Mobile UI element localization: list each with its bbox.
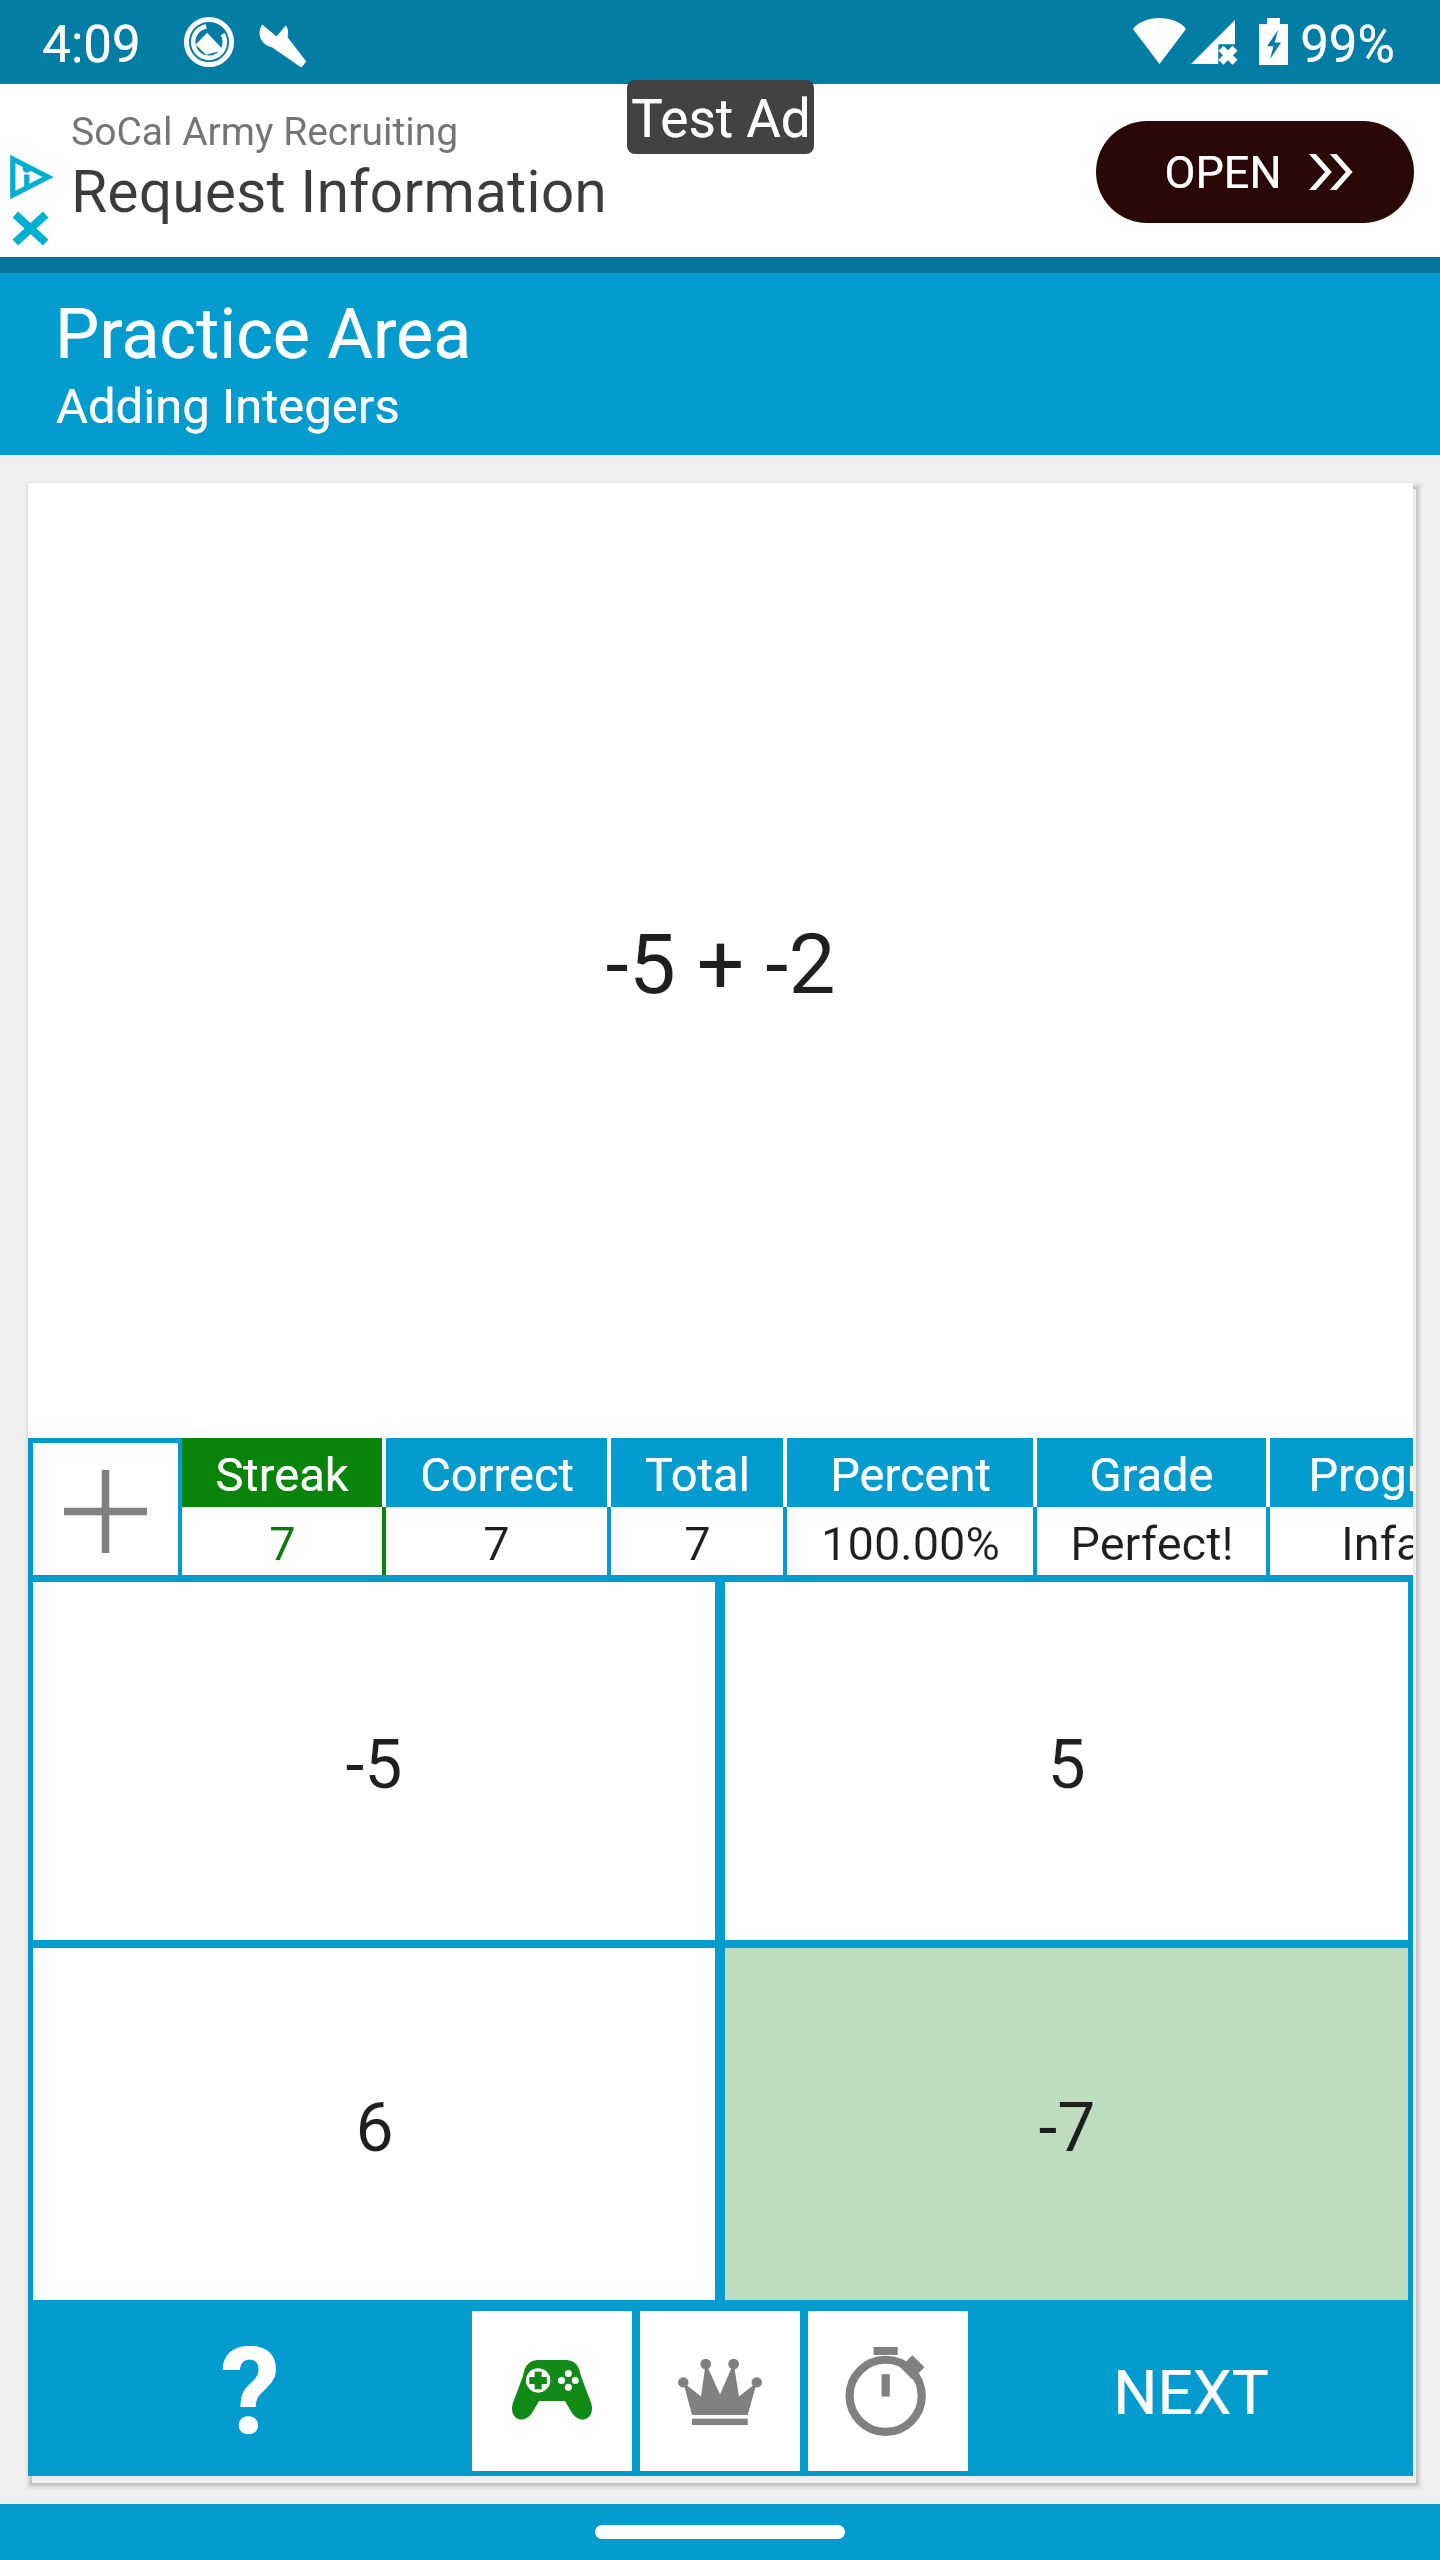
staticText: -5 + -2: [605, 915, 836, 1013]
staticText: 100.00%: [821, 1516, 1000, 1571]
staticText: Grade: [1089, 1447, 1214, 1502]
staticText: ?: [220, 2322, 280, 2463]
staticText: Perfect!: [1070, 1516, 1234, 1571]
button[interactable]: Add: [33, 1443, 178, 1575]
staticText: OPEN: [1164, 146, 1282, 199]
button[interactable]: Infant: [1270, 1507, 1413, 1575]
staticText: SoCal Army Recruiting: [71, 109, 459, 155]
staticText: 4:09: [42, 15, 141, 75]
staticText: Streak: [215, 1447, 349, 1502]
staticText: -7: [1038, 2088, 1096, 2168]
button[interactable]: Games: [472, 2311, 632, 2471]
button[interactable]: 6: [33, 1948, 715, 2300]
button[interactable]: 100.00%: [787, 1507, 1033, 1575]
button[interactable]: NEXT: [968, 2305, 1413, 2476]
staticText: 7: [483, 1516, 510, 1571]
button[interactable]: OPEN: [1096, 121, 1414, 223]
button[interactable]: 7: [611, 1507, 783, 1575]
staticText: Percent: [830, 1447, 991, 1502]
staticText: 6: [355, 2088, 394, 2168]
button[interactable]: Timer: [808, 2311, 968, 2471]
button[interactable]: 7: [386, 1507, 607, 1575]
button[interactable]: Leaderboard: [640, 2311, 800, 2471]
button[interactable]: Perfect!: [1037, 1507, 1266, 1575]
staticText: 7: [684, 1516, 711, 1571]
button[interactable]: -7: [725, 1948, 1408, 2300]
staticText: NEXT: [1113, 2356, 1269, 2429]
staticText: -5: [345, 1725, 403, 1805]
staticText: Total: [645, 1447, 750, 1502]
staticText: 5: [1047, 1725, 1086, 1805]
button[interactable]: 7: [182, 1507, 382, 1575]
button[interactable]: -5: [33, 1582, 715, 1940]
staticText: 99%: [1300, 15, 1395, 75]
staticText: Correct: [420, 1447, 574, 1502]
staticText: Request Information: [71, 157, 607, 226]
staticText: Progress: [1308, 1447, 1413, 1502]
staticText: Adding Integers: [56, 378, 400, 435]
staticText: Test Ad: [631, 88, 811, 150]
button[interactable]: Help: [28, 2305, 472, 2476]
staticText: 7: [269, 1516, 296, 1571]
staticText: Practice Area: [55, 293, 472, 375]
staticText: Infant: [1341, 1516, 1413, 1571]
button[interactable]: 5: [725, 1582, 1408, 1940]
